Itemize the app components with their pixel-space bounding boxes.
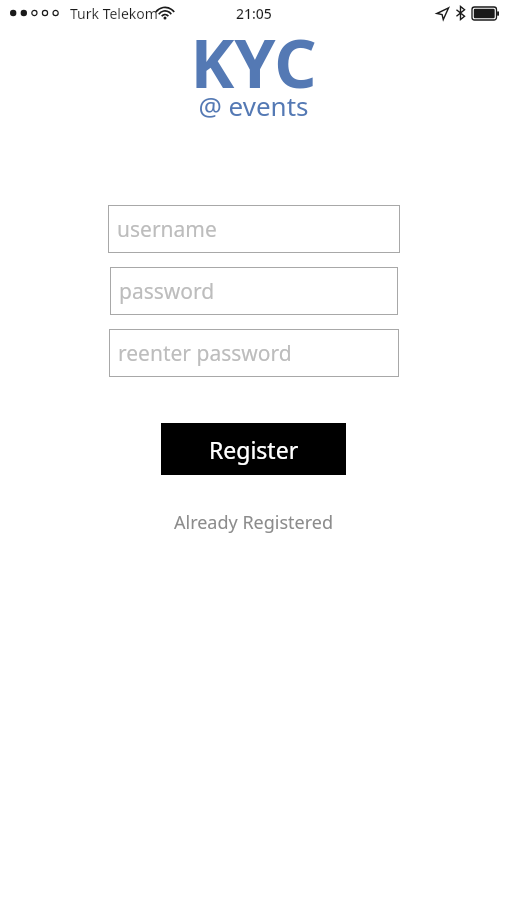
staticText: Already Registered — [174, 510, 334, 535]
staticText: KYC — [190, 17, 317, 107]
staticText: username — [117, 215, 217, 244]
staticText: Register — [209, 434, 299, 465]
staticText: @ events — [198, 88, 309, 123]
button[interactable]: Already Registered — [166, 506, 342, 539]
button[interactable]: Register — [161, 423, 346, 475]
staticText: reenter password — [118, 339, 292, 368]
staticText: Turk Telekom — [70, 4, 158, 23]
staticText: 21:05 — [236, 4, 272, 23]
button[interactable]: password — [110, 267, 398, 315]
button[interactable]: reenter password — [109, 329, 399, 377]
button[interactable]: username — [108, 205, 400, 253]
staticText: password — [119, 277, 215, 306]
